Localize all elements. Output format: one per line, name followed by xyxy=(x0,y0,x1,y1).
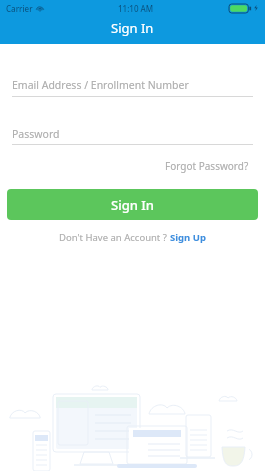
button[interactable]: Sign In xyxy=(7,189,258,220)
staticText: Sign In xyxy=(111,19,154,37)
button[interactable]: Forgot Password? xyxy=(161,155,253,177)
staticText: Don't Have an Account ? xyxy=(59,231,167,244)
staticText: Password xyxy=(12,127,60,141)
staticText: Sign In xyxy=(111,196,155,214)
staticText: Sign Up xyxy=(170,231,206,244)
staticText: Carrier xyxy=(6,3,33,14)
staticText: 11:10 AM xyxy=(118,3,154,14)
button[interactable]: Sign Up xyxy=(170,231,206,244)
staticText: Email Address / Enrollment Number xyxy=(12,78,189,92)
button[interactable]: Email Address / Enrollment Number xyxy=(12,74,253,96)
staticText: Forgot Password? xyxy=(165,159,249,173)
button[interactable]: Password xyxy=(12,124,253,144)
